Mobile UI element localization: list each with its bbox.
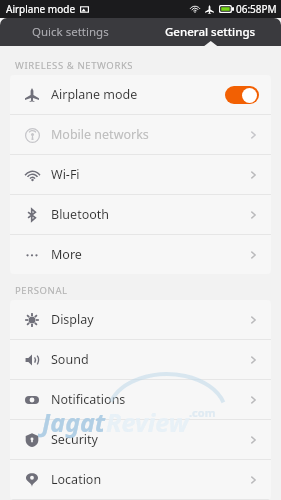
staticText: 06:58PM: [236, 2, 277, 16]
staticText: Quick settings: [32, 24, 109, 40]
staticText: Display: [51, 311, 94, 328]
staticText: Airplane mode: [6, 2, 76, 16]
staticText: Mobile networks: [51, 126, 149, 143]
button[interactable]: Airplane mode: [10, 75, 271, 114]
staticText: Jagat: [42, 405, 106, 439]
staticText: Location: [51, 471, 102, 488]
staticText: Bluetooth: [51, 206, 110, 223]
button[interactable]: Quick settings: [0, 18, 140, 46]
staticText: Sound: [51, 351, 89, 368]
button[interactable]: More: [10, 235, 271, 274]
button[interactable]: Display: [10, 300, 271, 339]
staticText: PERSONAL: [15, 284, 68, 297]
button[interactable]: Location: [10, 460, 271, 499]
button[interactable]: Mobile networks: [10, 115, 271, 154]
staticText: Notifications: [51, 391, 126, 408]
button[interactable]: Wi-Fi: [10, 155, 271, 194]
button[interactable]: Notifications: [10, 380, 271, 419]
button[interactable]: Toggle airplane mode: [225, 86, 259, 104]
staticText: More: [51, 246, 82, 263]
staticText: Wi-Fi: [51, 166, 80, 183]
button[interactable]: Sound: [10, 340, 271, 379]
staticText: Airplane mode: [51, 86, 138, 103]
staticText: .com: [189, 405, 216, 420]
button[interactable]: Bluetooth: [10, 195, 271, 234]
staticText: WIRELESS & NETWORKS: [15, 59, 134, 72]
staticText: Security: [51, 431, 98, 448]
button[interactable]: General settings: [140, 18, 281, 46]
staticText: General settings: [165, 24, 256, 40]
staticText: Review: [106, 405, 189, 439]
button[interactable]: Security: [10, 420, 271, 459]
